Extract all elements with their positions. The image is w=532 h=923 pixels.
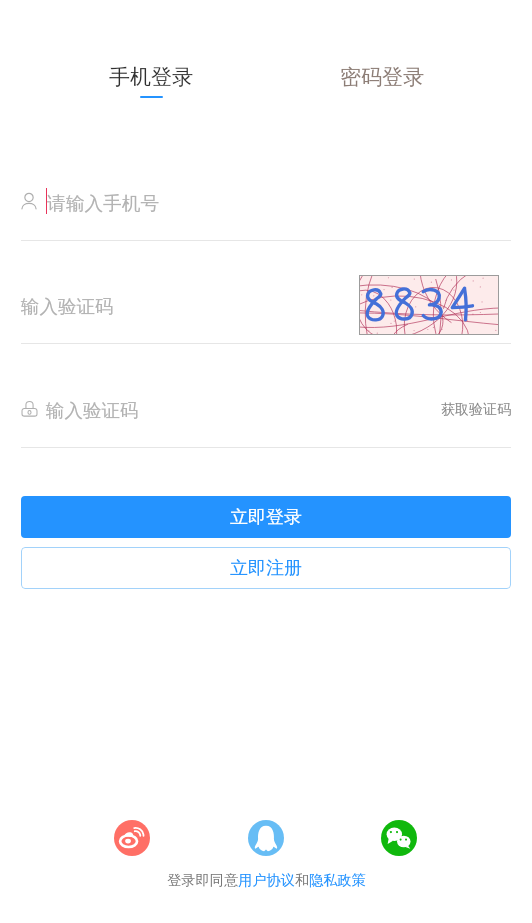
button[interactable]: Sign in with WeChat: [381, 820, 417, 856]
staticText: 立即注册: [230, 557, 302, 580]
staticText: 请输入手机号: [47, 192, 160, 216]
button[interactable]: 请输入手机号: [21, 184, 511, 222]
button[interactable]: Sign in with QQ: [248, 820, 284, 856]
staticText: 登录即同意用户协议和隐私政策: [167, 871, 366, 889]
button[interactable]: Refresh captcha image: [359, 275, 499, 335]
button[interactable]: 输入验证码: [21, 392, 411, 426]
staticText: 密码登录: [340, 64, 424, 90]
button[interactable]: 输入验证码: [21, 290, 321, 322]
button[interactable]: 登录即同意用户协议和隐私政策: [0, 869, 532, 891]
staticText: 输入验证码: [21, 295, 114, 318]
button[interactable]: Sign in with Weibo: [114, 820, 150, 856]
staticText: 手机登录: [109, 64, 193, 90]
staticText: 获取验证码: [441, 401, 511, 419]
button[interactable]: 立即注册: [21, 547, 511, 589]
button[interactable]: 获取验证码: [428, 391, 511, 429]
staticText: 立即登录: [230, 506, 302, 529]
button[interactable]: 立即登录: [21, 496, 511, 538]
button[interactable]: 密码登录: [322, 58, 442, 102]
staticText: 输入验证码: [46, 399, 139, 422]
button[interactable]: 手机登录: [91, 58, 211, 102]
